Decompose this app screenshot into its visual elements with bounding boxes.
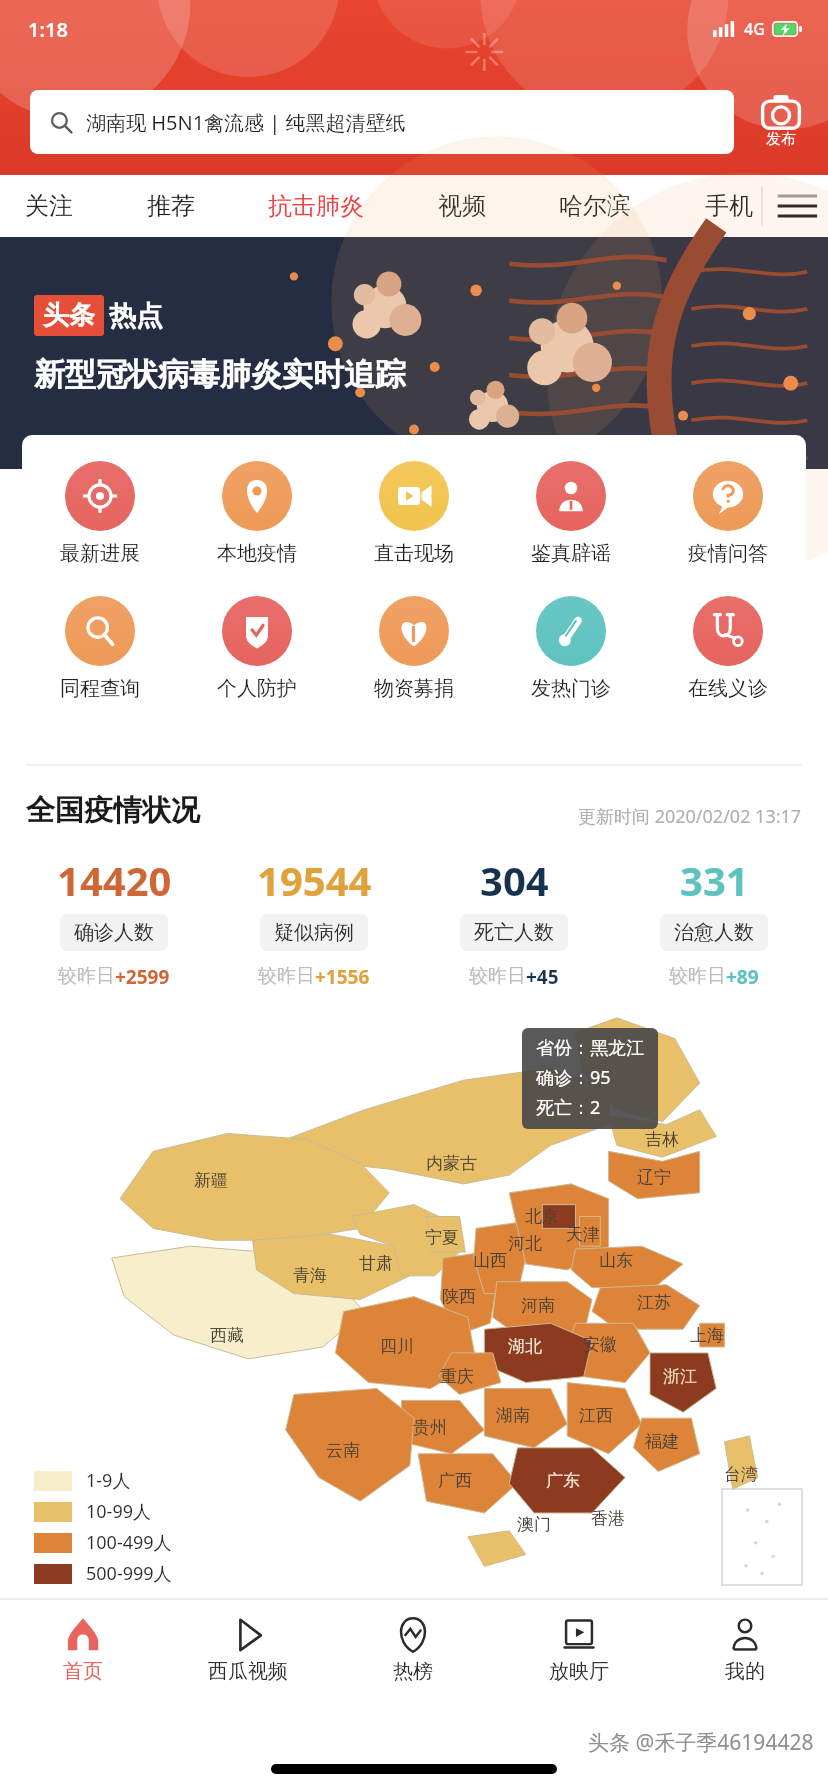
staticText: 热点 xyxy=(109,299,163,333)
staticText: 头条 xyxy=(43,299,95,332)
staticText: 19544 xyxy=(257,853,372,907)
button[interactable]: 物资募捐 xyxy=(335,596,492,701)
staticText: 304 xyxy=(480,853,549,907)
staticText: 较昨日 xyxy=(58,964,115,988)
staticText: 个人防护 xyxy=(217,676,297,701)
button[interactable]: 在线义诊 xyxy=(649,596,806,701)
staticText: 贵州 xyxy=(413,1417,447,1438)
staticText: 1-9人 xyxy=(86,1468,131,1493)
staticText: 浙江 xyxy=(663,1366,697,1387)
staticText: 4G xyxy=(744,18,765,40)
button[interactable]: 推荐 xyxy=(144,183,198,229)
staticText: 关注 xyxy=(25,191,73,221)
button[interactable]: 放映厅 xyxy=(496,1600,662,1700)
button[interactable]: 331 xyxy=(614,853,814,990)
staticText: 云南 xyxy=(326,1440,360,1461)
staticText: 广东 xyxy=(546,1470,580,1491)
staticText: 河北 xyxy=(508,1233,542,1254)
staticText: 1:18 xyxy=(28,16,68,43)
staticText: 广西 xyxy=(438,1470,472,1491)
staticText: 甘肃 xyxy=(359,1253,393,1274)
staticText: 湖南 xyxy=(496,1405,530,1426)
button[interactable]: 304 xyxy=(414,853,614,990)
staticText: 鉴真辟谣 xyxy=(531,541,611,566)
button[interactable]: 鉴真辟谣 xyxy=(492,461,649,566)
staticText: 新型冠状病毒肺炎实时追踪 xyxy=(34,355,406,394)
button[interactable]: 个人防护 xyxy=(178,596,335,701)
staticText: 宁夏 xyxy=(425,1227,459,1248)
button[interactable]: 首页 xyxy=(0,1600,165,1700)
staticText: 放映厅 xyxy=(549,1659,609,1684)
staticText: 视频 xyxy=(438,191,486,221)
staticText: 辽宁 xyxy=(637,1167,671,1188)
button[interactable]: 湖南现 H5N1禽流感 | 纯黑超清壁纸 xyxy=(30,90,734,154)
staticText: 同程查询 xyxy=(60,676,140,701)
staticText: 河南 xyxy=(521,1295,555,1316)
staticText: 更新时间 2020/02/02 13:17 xyxy=(578,804,802,829)
staticText: 吉林 xyxy=(645,1129,679,1150)
staticText: 治愈人数 xyxy=(674,920,754,945)
button[interactable]: 疫情问答 xyxy=(649,461,806,566)
staticText: 我的 xyxy=(725,1659,765,1684)
staticText: 内蒙古 xyxy=(426,1153,477,1174)
staticText: 物资募捐 xyxy=(374,676,454,701)
staticText: 首页 xyxy=(63,1659,103,1684)
staticText: 湖南现 H5N1禽流感 | 纯黑超清壁纸 xyxy=(86,109,406,136)
staticText: +45 xyxy=(526,964,559,990)
button[interactable]: 抗击肺炎 xyxy=(265,183,367,229)
staticText: 头条 @禾子季46194428 xyxy=(588,1728,814,1757)
button[interactable]: 关注 xyxy=(22,183,76,229)
button[interactable]: 发布 xyxy=(746,95,816,149)
staticText: 500-999人 xyxy=(86,1561,172,1586)
staticText: 331 xyxy=(680,853,749,907)
staticText: 最新进展 xyxy=(60,541,140,566)
button[interactable]: 直击现场 xyxy=(335,461,492,566)
button[interactable]: Menu xyxy=(760,175,828,237)
staticText: 福建 xyxy=(645,1431,679,1452)
staticText: 100-499人 xyxy=(86,1530,172,1555)
button[interactable]: 热榜 xyxy=(330,1600,496,1700)
staticText: 省份：黑龙江 xyxy=(536,1037,644,1060)
staticText: 湖北 xyxy=(508,1336,542,1357)
button[interactable]: 视频 xyxy=(435,183,489,229)
staticText: 哈尔滨 xyxy=(559,191,631,221)
staticText: 山西 xyxy=(473,1250,507,1271)
staticText: 台湾 xyxy=(724,1464,758,1485)
staticText: 北京 xyxy=(525,1206,559,1227)
staticText: 西藏 xyxy=(210,1325,244,1346)
staticText: 发布 xyxy=(766,130,796,149)
staticText: 较昨日 xyxy=(258,964,315,988)
staticText: 安徽 xyxy=(583,1334,617,1355)
staticText: 较昨日 xyxy=(669,964,726,988)
staticText: 新疆 xyxy=(194,1170,228,1191)
button[interactable]: 最新进展 xyxy=(22,461,178,566)
staticText: 澳门 xyxy=(517,1514,551,1535)
staticText: 西瓜视频 xyxy=(208,1659,288,1684)
button[interactable]: 同程查询 xyxy=(22,596,178,701)
staticText: 较昨日 xyxy=(469,964,526,988)
staticText: 天津 xyxy=(566,1224,600,1245)
button[interactable]: 发热门诊 xyxy=(492,596,649,701)
staticText: +89 xyxy=(726,964,759,990)
button[interactable]: 本地疫情 xyxy=(178,461,335,566)
staticText: 陕西 xyxy=(442,1286,476,1307)
staticText: 山东 xyxy=(599,1250,633,1271)
button[interactable]: 哈尔滨 xyxy=(556,183,634,229)
button[interactable]: 14420 xyxy=(14,853,214,990)
staticText: 推荐 xyxy=(147,191,195,221)
staticText: 四川 xyxy=(380,1336,414,1357)
staticText: 发热门诊 xyxy=(531,676,611,701)
staticText: 10-99人 xyxy=(86,1499,151,1524)
button[interactable]: 手机 xyxy=(702,183,756,229)
button[interactable]: 我的 xyxy=(662,1600,828,1700)
staticText: +2599 xyxy=(115,964,170,990)
staticText: 本地疫情 xyxy=(217,541,297,566)
button[interactable]: 西瓜视频 xyxy=(165,1600,330,1700)
staticText: 江苏 xyxy=(637,1292,671,1313)
button[interactable]: 19544 xyxy=(214,853,414,990)
staticText: 疑似病例 xyxy=(274,920,354,945)
staticText: 上海 xyxy=(690,1325,724,1346)
staticText: 死亡人数 xyxy=(474,920,554,945)
staticText: 重庆 xyxy=(440,1366,474,1387)
staticText: 抗击肺炎 xyxy=(268,191,364,221)
